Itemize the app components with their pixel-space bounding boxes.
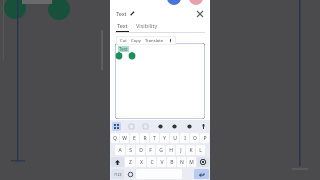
staticText: F [149,147,152,154]
button[interactable]: C [147,157,156,167]
staticText: R [143,135,147,142]
staticText: C [150,159,154,166]
button[interactable]: R [140,133,149,143]
button[interactable]: Theme [185,122,194,131]
staticText: Text [116,10,127,17]
button[interactable]: X [136,157,146,167]
button[interactable]: Close [195,9,204,18]
staticText: Q [113,135,117,142]
button[interactable]: D [136,145,145,155]
staticText: Copy [131,38,141,44]
button[interactable]: Voice input [199,122,208,131]
button[interactable]: K [186,145,195,155]
button[interactable]: N [177,157,186,167]
staticText: W [122,135,127,142]
button[interactable]: Emoji [125,169,135,179]
button[interactable] [115,43,205,119]
staticText: Y [163,135,166,142]
staticText: I [184,135,186,142]
staticText: Text [119,46,128,52]
button[interactable]: Gif [170,122,179,131]
button[interactable]: Translate [145,38,164,44]
button[interactable]: ?123 [111,169,124,179]
button[interactable]: Edit [129,10,136,17]
button[interactable]: Y [160,133,169,143]
button[interactable]: I [180,133,189,143]
staticText: M [189,159,194,166]
button[interactable]: Q [111,133,119,143]
button[interactable]: W [120,133,129,143]
staticText: S [129,147,132,154]
button[interactable]: Clipboard [112,122,121,131]
button[interactable]: B [167,157,176,167]
staticText: T [153,135,156,142]
staticText: X [140,159,143,166]
button[interactable]: Text [116,21,129,32]
button[interactable]: V [157,157,166,167]
staticText: A [118,147,122,154]
staticText: Visibility [136,22,158,29]
button[interactable]: G [156,145,165,155]
staticText: U [173,135,177,142]
button[interactable]: E [130,133,139,143]
button[interactable]: O [190,133,199,143]
staticText: K [189,147,193,154]
button[interactable]: L [196,145,205,155]
button[interactable]: J [176,145,185,155]
staticText: Z [129,159,132,166]
staticText: J [180,147,182,154]
staticText: D [139,147,143,154]
staticText: H [169,147,173,154]
button[interactable]: F [146,145,155,155]
button[interactable]: Sticker [156,122,165,131]
button[interactable]: M [187,157,196,167]
button[interactable]: Enter [194,169,209,179]
button[interactable]: Z [125,157,135,167]
button[interactable]: More options [168,38,173,43]
staticText: O [193,135,197,142]
staticText: L [199,147,202,154]
staticText: V [160,159,164,166]
button[interactable]: Tool 1 [127,122,136,131]
button[interactable]: S [126,145,135,155]
button[interactable]: Cut [120,38,127,44]
button[interactable]: H [166,145,175,155]
button[interactable]: Tool 2 [141,122,150,131]
button[interactable]: A [115,145,125,155]
staticText: E [133,135,136,142]
button[interactable]: Visibility [136,22,158,32]
staticText: B [170,159,174,166]
button[interactable]: Backspace [197,157,209,167]
button[interactable]: T [150,133,159,143]
button[interactable]: Shift [111,157,124,167]
staticText: G [159,147,163,154]
button[interactable]: P [200,133,209,143]
staticText: ?123 [114,172,122,177]
staticText: N [180,159,184,166]
staticText: Cut [120,38,127,44]
staticText: P [203,135,207,142]
button[interactable]: Copy [131,38,141,44]
button[interactable]: U [170,133,179,143]
staticText: Text [117,22,128,29]
staticText: Translate [145,38,164,44]
